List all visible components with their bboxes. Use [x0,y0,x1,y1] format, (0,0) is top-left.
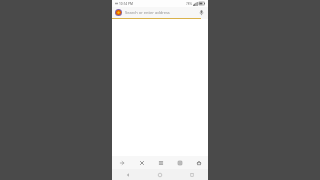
button[interactable]: Stop loading [132,156,151,169]
button[interactable]: Menu [151,156,170,169]
button[interactable]: Tabs [170,156,189,169]
button[interactable]: Back [112,169,144,180]
other: Browser logo [115,9,122,16]
button[interactable]: Home [144,169,176,180]
button[interactable]: Forward [112,156,132,169]
button[interactable]: Browser logo [112,7,208,18]
staticText: Search or enter address [125,10,170,15]
staticText: 78% [186,2,192,6]
button[interactable]: Recents [176,169,208,180]
staticText: 10:14 PM [119,2,133,6]
button[interactable]: Voice search [198,9,205,16]
button[interactable]: Home [189,156,208,169]
